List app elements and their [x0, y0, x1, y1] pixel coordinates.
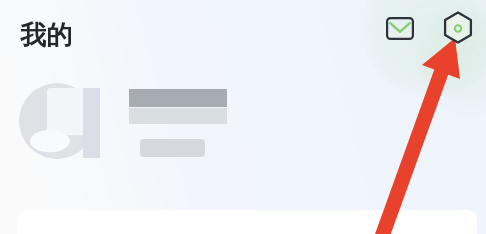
button[interactable]: Settings	[440, 10, 476, 45]
button[interactable]: Messages	[382, 12, 418, 45]
staticText: 我的	[20, 19, 72, 52]
button[interactable]: Profile photo	[19, 83, 95, 159]
